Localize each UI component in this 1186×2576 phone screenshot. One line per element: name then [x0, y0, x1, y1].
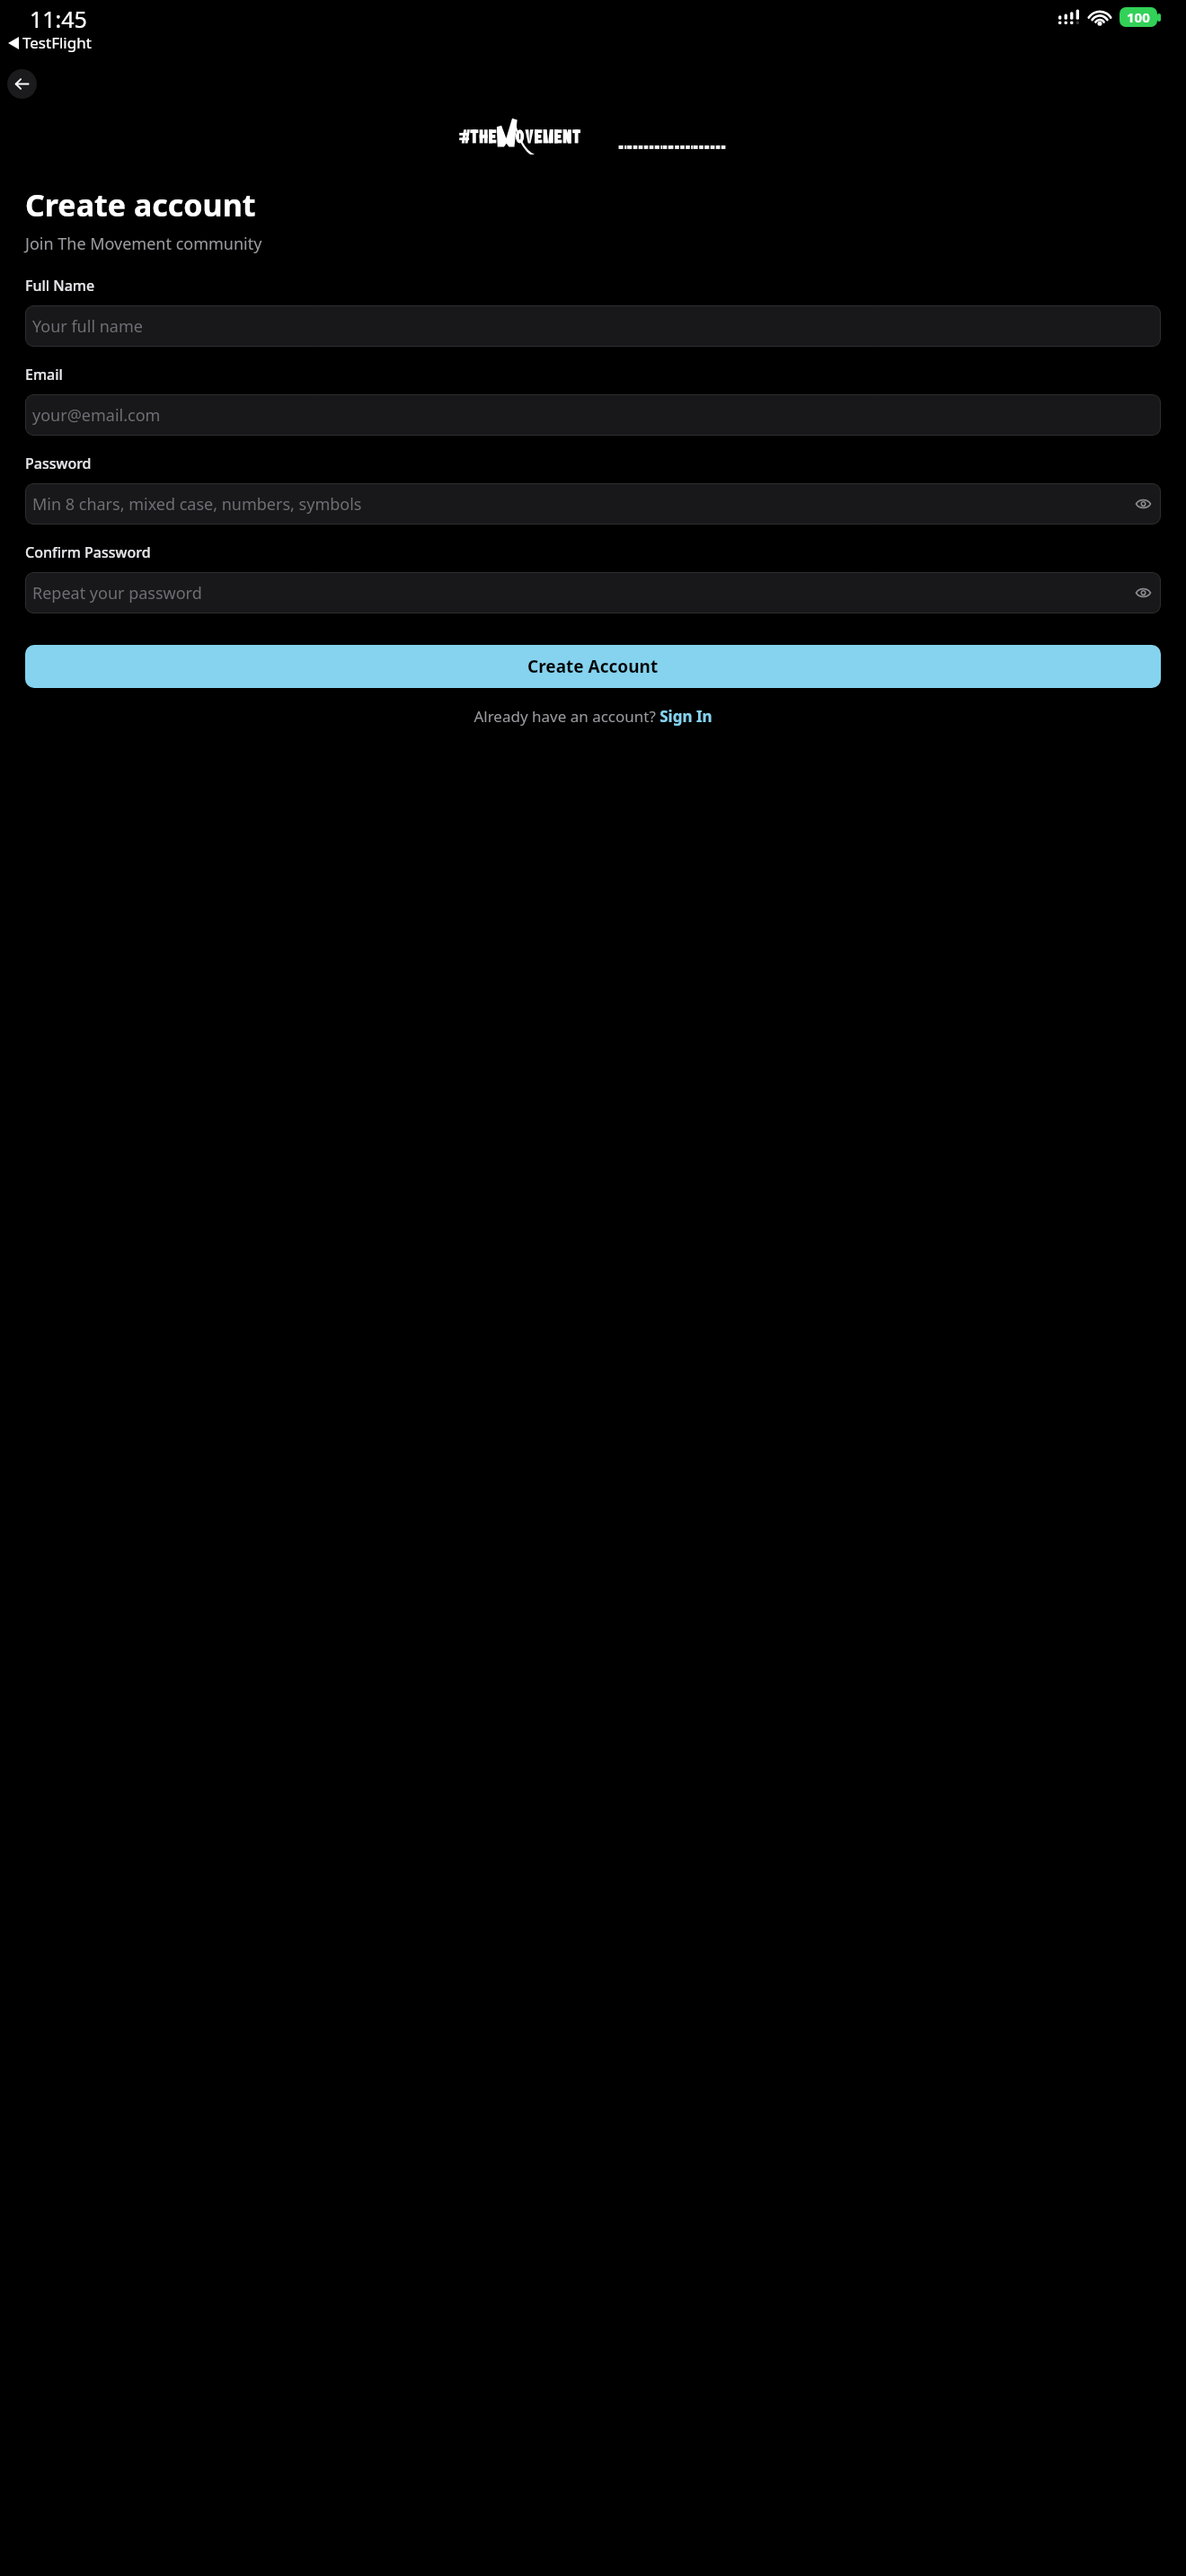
button[interactable]: Back	[7, 69, 37, 99]
button[interactable]: Your full name	[25, 305, 1161, 347]
button[interactable]: Already have an account? Sign In	[468, 702, 718, 730]
staticText: Full Name	[25, 276, 95, 296]
staticText: Create Account	[527, 655, 659, 678]
staticText: Already have an account? Sign In	[474, 706, 712, 727]
staticText: Password	[25, 454, 92, 473]
staticText: your@email.com	[32, 404, 161, 427]
staticText: Confirm Password	[25, 543, 151, 562]
staticText: Email	[25, 365, 63, 384]
button[interactable]: Show password	[1125, 575, 1161, 611]
staticText: Join The Movement community	[25, 233, 262, 255]
staticText: 11:45	[30, 4, 87, 32]
staticText: Your full name	[32, 315, 143, 338]
staticText: Repeat your password	[32, 582, 202, 604]
staticText: TestFlight	[22, 32, 92, 53]
button[interactable]: Min 8 chars, mixed case, numbers, symbol…	[25, 483, 1161, 525]
button[interactable]: Repeat your password	[25, 572, 1161, 613]
button[interactable]: Show password	[1125, 486, 1161, 522]
staticText: Min 8 chars, mixed case, numbers, symbol…	[32, 493, 362, 516]
button[interactable]: your@email.com	[25, 394, 1161, 436]
button[interactable]: Create Account	[25, 645, 1161, 688]
staticText: Create account	[25, 184, 256, 225]
staticText: 100	[1127, 8, 1150, 26]
